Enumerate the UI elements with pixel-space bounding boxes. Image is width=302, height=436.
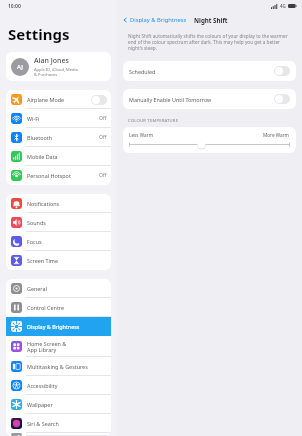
button[interactable]: Sounds: [6, 213, 111, 232]
button[interactable]: Multitasking & Gestures: [6, 357, 111, 376]
staticText: Scheduled: [129, 68, 274, 75]
staticText: Personal Hotspot: [27, 172, 99, 179]
button[interactable]: Bluetooth: [6, 128, 111, 147]
button[interactable]: Display & Brightness: [6, 317, 111, 336]
staticText: Apple Pencil: [27, 433, 107, 436]
button[interactable]: Toggle off: [274, 94, 290, 104]
button[interactable]: Siri & Search: [6, 414, 111, 433]
staticText: Off: [99, 134, 107, 141]
staticText: 10:00: [8, 3, 21, 10]
staticText: Less Warm: [129, 132, 154, 138]
staticText: Screen Time: [27, 257, 107, 264]
staticText: Apple ID, iCloud, Media: [34, 67, 78, 72]
staticText: Display & Brightness: [27, 323, 107, 330]
button[interactable]: Notifications: [6, 194, 111, 213]
staticText: Control Centre: [27, 304, 107, 311]
staticText: Wallpaper: [27, 401, 107, 408]
button[interactable]: Colour temperature slider: [129, 140, 290, 149]
button[interactable]: Airplane Mode: [6, 90, 111, 109]
staticText: Multitasking & Gestures: [27, 363, 107, 370]
staticText: Siri & Search: [27, 420, 107, 427]
staticText: Home Screen & App Library: [27, 340, 107, 354]
staticText: Night Shift automatically shifts the col…: [128, 33, 288, 51]
staticText: Airplane Mode: [27, 96, 91, 103]
button[interactable]: Scheduled: [123, 61, 296, 81]
button[interactable]: Apple Pencil: [6, 433, 111, 436]
staticText: Mobile Data: [27, 153, 107, 160]
staticText: Focus: [27, 238, 107, 245]
staticText: Notifications: [27, 200, 107, 207]
button[interactable]: Accessibility: [6, 376, 111, 395]
button[interactable]: Focus: [6, 232, 111, 251]
staticText: Accessibility: [27, 382, 107, 389]
staticText: & Purchases: [34, 72, 58, 77]
button[interactable]: Wi-Fi: [6, 109, 111, 128]
button[interactable]: General: [6, 279, 111, 298]
staticText: Wi-Fi: [27, 115, 99, 122]
staticText: AJ: [17, 63, 23, 71]
button[interactable]: Home Screen & App Library: [6, 336, 111, 357]
button[interactable]: Toggle off: [91, 95, 107, 105]
staticText: Sounds: [27, 219, 107, 226]
button[interactable]: Wallpaper: [6, 395, 111, 414]
staticText: Off: [99, 172, 107, 179]
staticText: Manually Enable Until Tomorrow: [129, 96, 274, 103]
button[interactable]: Control Centre: [6, 298, 111, 317]
button[interactable]: Screen Time: [6, 251, 111, 270]
button[interactable]: Personal Hotspot: [6, 166, 111, 185]
staticText: More Warm: [263, 132, 290, 138]
staticText: Alan Jones: [34, 56, 69, 66]
button[interactable]: Display & Brightness: [121, 14, 188, 26]
button[interactable]: AJ: [6, 52, 111, 81]
button[interactable]: Manually Enable Until Tomorrow: [123, 89, 296, 109]
button[interactable]: Toggle off: [274, 66, 290, 76]
staticText: Off: [99, 115, 107, 122]
staticText: COLOUR TEMPERATURE: [128, 118, 179, 124]
staticText: Settings: [8, 24, 70, 44]
staticText: Bluetooth: [27, 134, 99, 141]
staticText: Night Shift: [194, 16, 228, 24]
staticText: General: [27, 285, 107, 292]
staticText: Display & Brightness: [130, 16, 187, 24]
staticText: 4G: [280, 3, 286, 9]
button[interactable]: Mobile Data: [6, 147, 111, 166]
